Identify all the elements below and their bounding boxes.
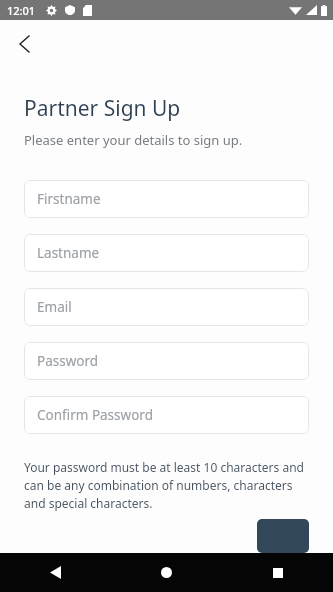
button[interactable]: Firstname	[24, 180, 309, 218]
staticText: Your password must be at least 10 charac…	[24, 459, 309, 511]
staticText: Please enter your details to sign up.	[24, 131, 243, 149]
staticText: Confirm Password	[37, 406, 153, 424]
button[interactable]: Home	[111, 553, 222, 592]
staticText: 12:01	[7, 3, 36, 18]
button[interactable]: Sign Up	[257, 519, 309, 553]
button[interactable]: Back	[4, 24, 44, 64]
button[interactable]: Confirm Password	[24, 396, 309, 434]
staticText: Email	[37, 298, 72, 316]
button[interactable]: Email	[24, 288, 309, 326]
staticText: Password	[37, 352, 99, 370]
staticText: Partner Sign Up	[24, 94, 181, 123]
button[interactable]: Back	[0, 553, 111, 592]
button[interactable]: Lastname	[24, 234, 309, 272]
staticText: Firstname	[37, 190, 101, 208]
button[interactable]: Recent apps	[222, 553, 333, 592]
button[interactable]: Password	[24, 342, 309, 380]
staticText: Lastname	[37, 244, 100, 262]
